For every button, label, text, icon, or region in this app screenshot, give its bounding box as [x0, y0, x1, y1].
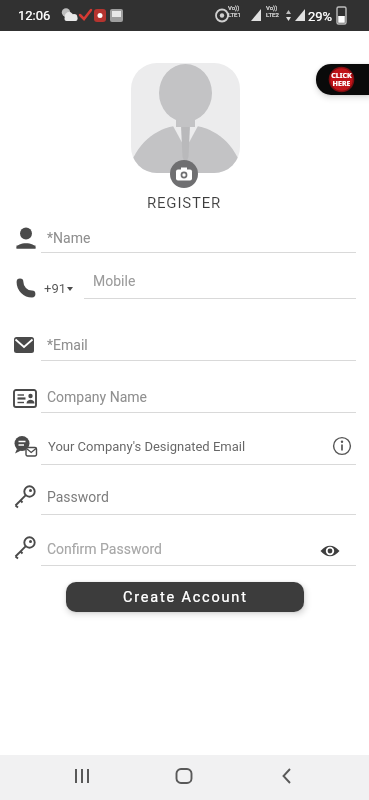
- button[interactable]: [164, 762, 204, 792]
- staticText: REGISTER: [147, 194, 222, 212]
- staticText: +91: [44, 281, 66, 296]
- staticText: CLICK HERE: [331, 71, 352, 88]
- button[interactable]: [319, 541, 341, 561]
- button[interactable]: [41, 537, 316, 566]
- staticText: Your Company's Designated Email: [48, 439, 246, 454]
- button[interactable]: [41, 385, 356, 413]
- button[interactable]: Create Account: [66, 582, 304, 612]
- button[interactable]: [41, 226, 356, 253]
- button[interactable]: [41, 486, 356, 515]
- staticText: *Email: [47, 337, 88, 353]
- staticText: Confirm Password: [47, 541, 162, 557]
- staticText: Mobile: [93, 273, 136, 289]
- button[interactable]: [62, 762, 102, 792]
- button[interactable]: [84, 270, 356, 299]
- button[interactable]: CLICK HERE: [316, 64, 369, 95]
- staticText: Company Name: [47, 389, 147, 405]
- button[interactable]: [267, 762, 307, 792]
- staticText: Vo)) LTE2: [266, 4, 279, 18]
- button[interactable]: [170, 160, 198, 188]
- staticText: Password: [47, 489, 109, 505]
- staticText: Vo)) LTE1: [228, 4, 241, 18]
- staticText: *Name: [47, 230, 91, 246]
- button[interactable]: [41, 333, 356, 361]
- button[interactable]: [333, 437, 351, 455]
- staticText: 12:06: [18, 8, 51, 23]
- staticText: Create Account: [123, 589, 248, 606]
- staticText: 29%: [308, 9, 333, 24]
- button[interactable]: [41, 434, 326, 465]
